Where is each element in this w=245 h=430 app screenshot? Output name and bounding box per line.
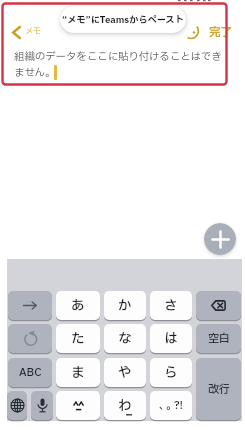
staticText: ABC [19,364,42,381]
staticText: た [71,329,85,349]
button[interactable]: 完了 [209,24,232,41]
staticText: は [164,329,178,349]
button[interactable]: ら [150,358,192,387]
button[interactable]: さ [150,291,192,320]
button[interactable]: あ [56,291,100,320]
staticText: ません。 [14,65,56,81]
button[interactable]: は [150,324,192,353]
staticText: ら [164,363,178,383]
staticText: か [118,296,132,316]
button[interactable] [204,223,236,255]
button[interactable]: メモ [25,25,41,38]
button[interactable] [31,391,53,420]
staticText: 組織のデータをここに貼り付けることはでき [14,49,222,65]
button[interactable] [196,291,241,320]
button[interactable] [8,291,52,320]
staticText: メモ [25,25,41,38]
staticText: 改行 [208,381,230,398]
staticText: あ [71,296,85,316]
staticText: わ [118,396,132,416]
button[interactable]: な [104,324,146,353]
button[interactable]: か [104,291,146,320]
button[interactable]: 空白 [196,324,241,353]
staticText: 完了 [209,24,232,41]
button[interactable]: わ [104,391,146,420]
button[interactable] [8,324,52,353]
staticText: な [118,329,132,349]
button[interactable]: ま [56,358,100,387]
button[interactable]: や [104,358,146,387]
button[interactable]: 、。 [150,391,192,420]
staticText: ?! [174,397,184,414]
staticText: や [118,363,132,383]
button[interactable]: 改行 [196,358,241,420]
staticText: 、。 [159,398,174,414]
button[interactable]: ABC [8,358,52,387]
staticText: ま [71,363,85,383]
button[interactable] [56,391,100,420]
staticText: “メモ”にTeamsからペースト [62,13,184,27]
button[interactable] [7,391,27,420]
staticText: さ [164,296,178,316]
button[interactable]: た [56,324,100,353]
staticText: 空白 [208,330,230,347]
